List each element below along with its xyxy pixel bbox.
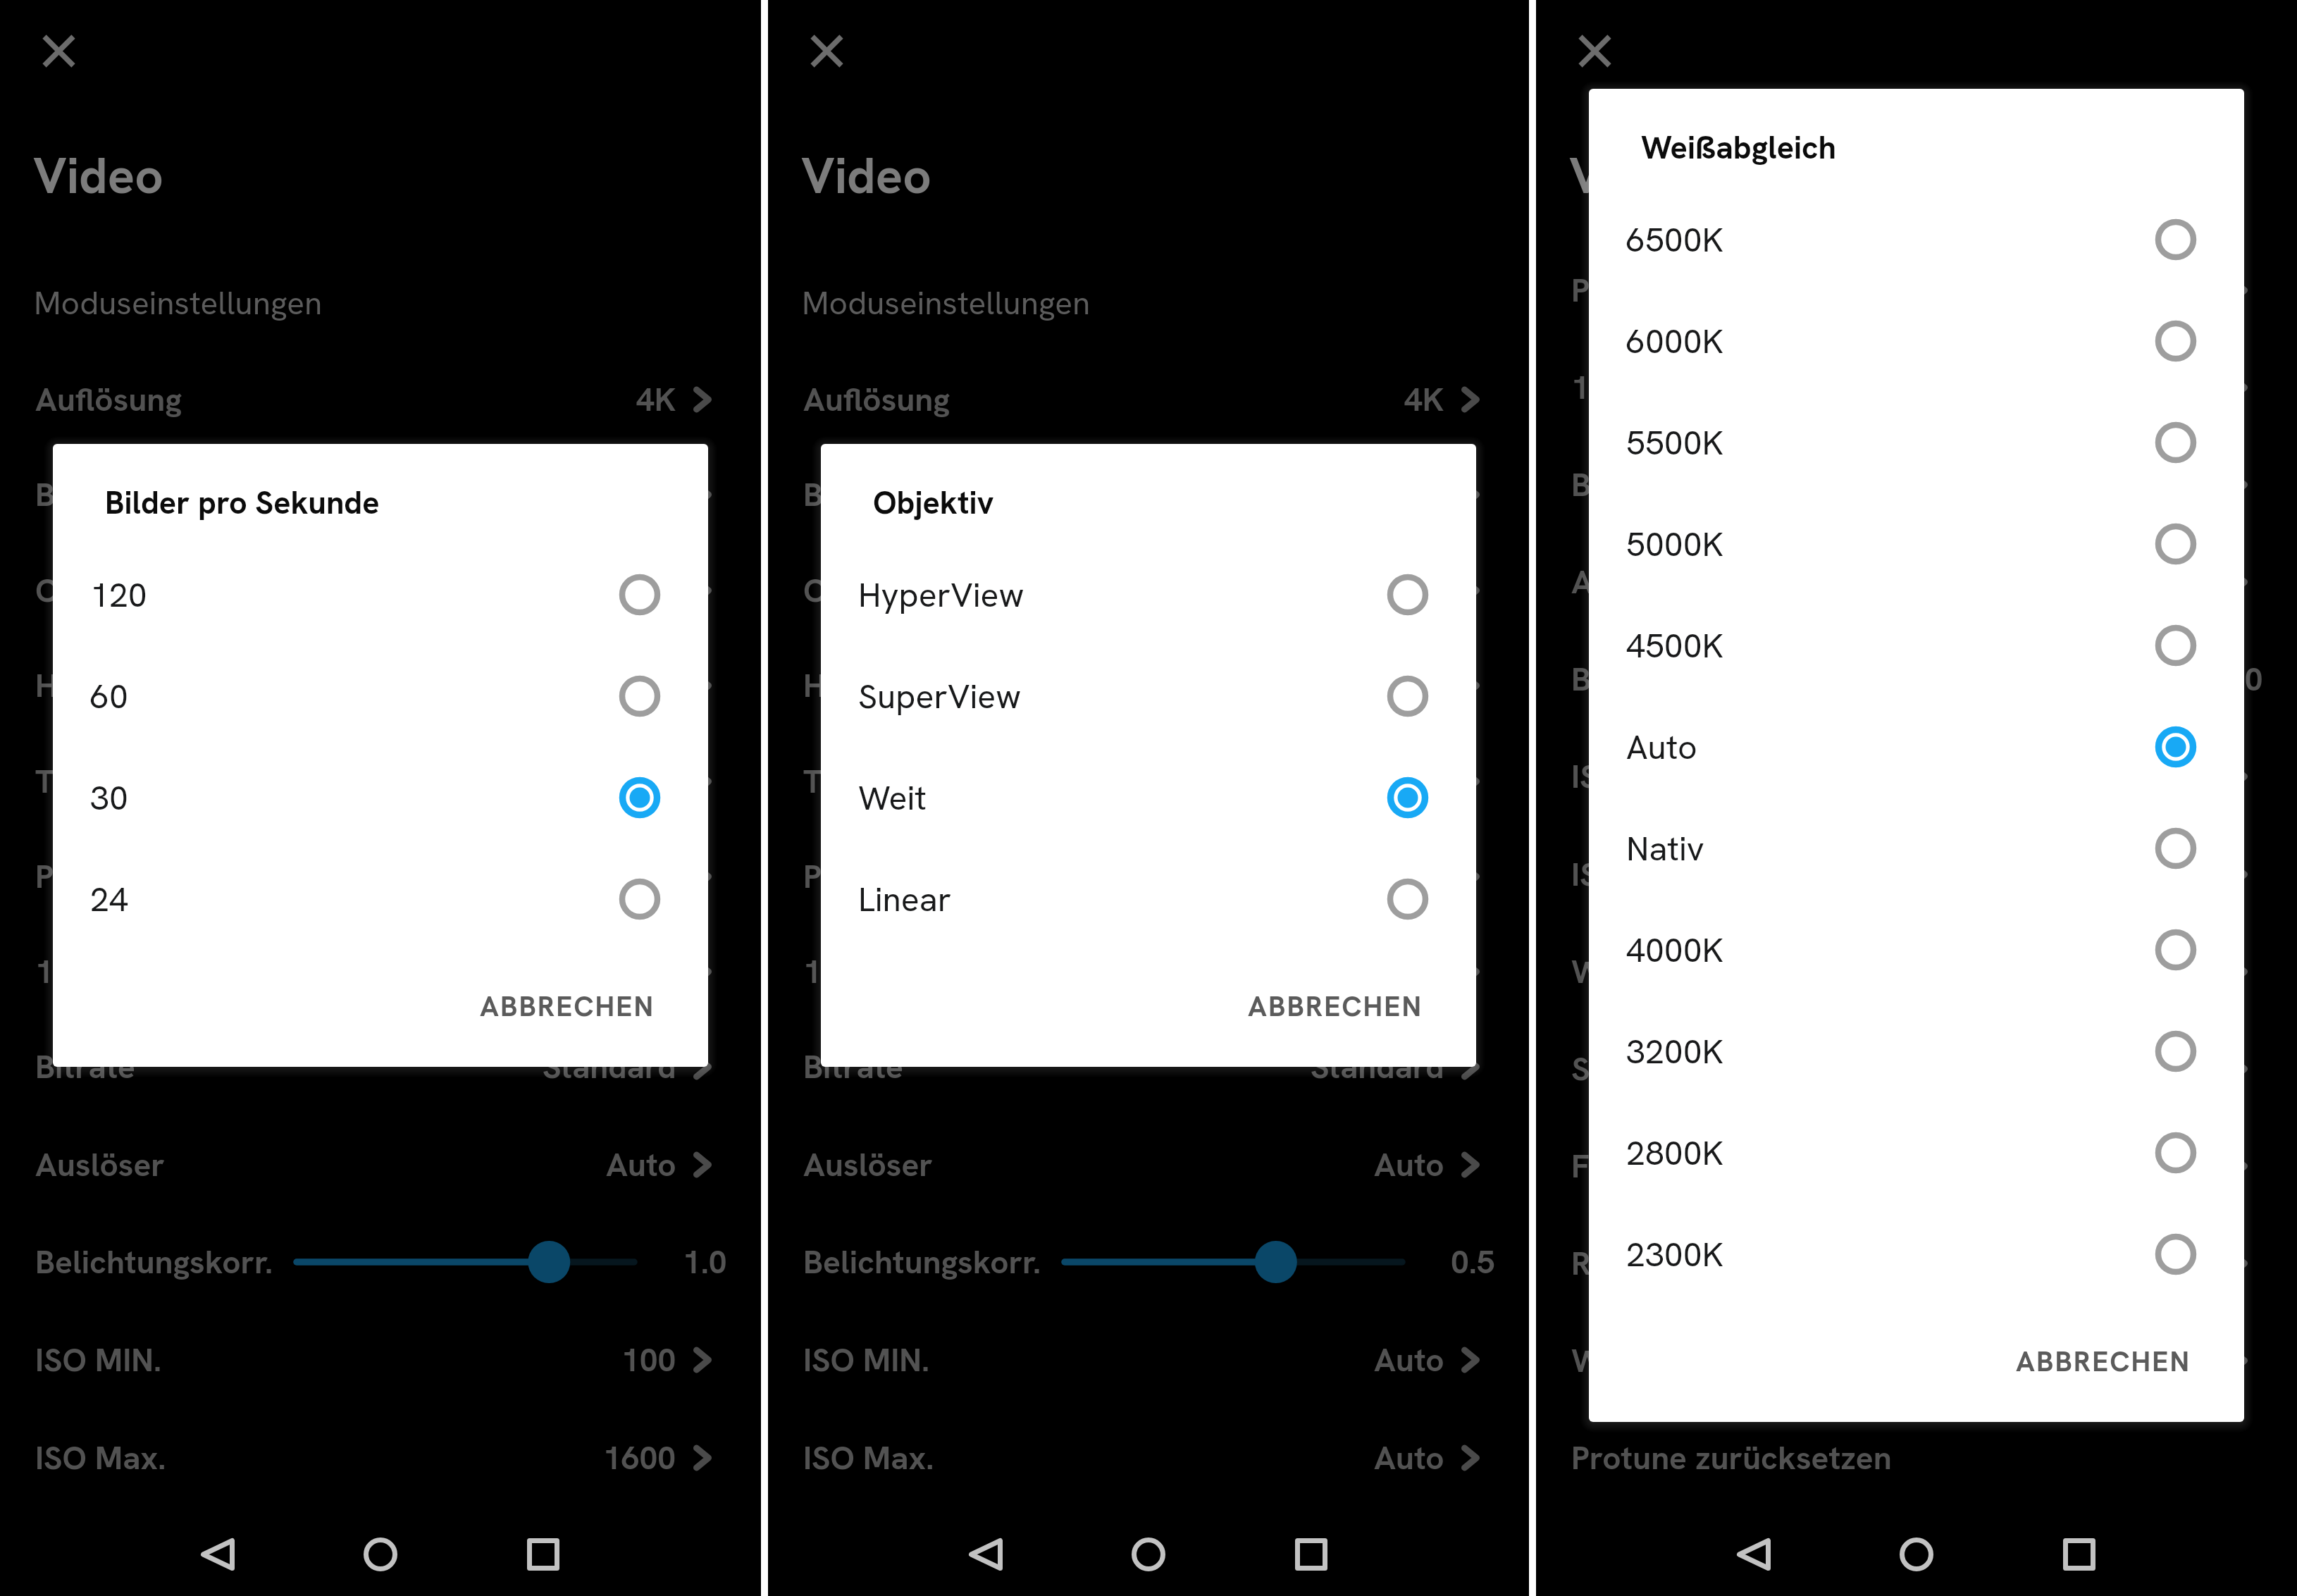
- button[interactable]: 2300K: [1589, 1204, 2244, 1305]
- button[interactable]: Windgeräuschred.: [1536, 1312, 2297, 1409]
- button[interactable]: 24: [53, 848, 708, 950]
- button[interactable]: 30: [53, 747, 708, 848]
- button[interactable]: Timer: [768, 733, 1529, 829]
- staticText: Bilder pro Sekunde: [35, 474, 316, 516]
- button[interactable]: Linear: [821, 848, 1476, 950]
- button[interactable]: Protune zurücksetzen: [1536, 1409, 2297, 1506]
- button[interactable]: Nativ: [1589, 798, 2244, 899]
- button[interactable]: Home: [345, 1519, 416, 1590]
- button[interactable]: Bilder pro Sekunde: [0, 446, 761, 543]
- staticText: 6500K: [1626, 218, 1723, 262]
- button[interactable]: Close: [1561, 17, 1629, 85]
- button[interactable]: 5500K: [1589, 392, 2244, 493]
- staticText: Natürlich: [2076, 1145, 2212, 1187]
- staticText: 30: [90, 776, 128, 820]
- button[interactable]: 120: [53, 544, 708, 645]
- staticText: 0.5: [1451, 1241, 1495, 1283]
- button[interactable]: Protune: [1536, 242, 2297, 338]
- staticText: 1.0: [2219, 658, 2263, 700]
- staticText: Standard: [1311, 1046, 1444, 1088]
- button[interactable]: Bitrate: [0, 1018, 761, 1115]
- button[interactable]: HyperSmooth: [0, 637, 761, 734]
- staticText: Moduseinstellungen: [34, 282, 323, 324]
- button[interactable]: ABBRECHEN: [2002, 1328, 2205, 1395]
- button[interactable]: Bitrate: [768, 1018, 1529, 1115]
- button[interactable]: Schärfe: [1536, 1020, 2297, 1117]
- button[interactable]: ABBRECHEN: [1234, 972, 1437, 1040]
- staticText: Weit: [858, 776, 927, 820]
- staticText: Weißabgleich: [1571, 951, 1771, 993]
- staticText: Auto: [1374, 1144, 1444, 1186]
- staticText: Video: [1569, 143, 1699, 209]
- staticText: Standard: [543, 1046, 676, 1088]
- staticText: HyperView: [858, 573, 1024, 617]
- button[interactable]: Recent apps: [2044, 1519, 2115, 1590]
- button[interactable]: 10-Bit-Farbe: [0, 923, 761, 1020]
- staticText: 60: [90, 674, 128, 719]
- staticText: Linear: [858, 877, 952, 922]
- button[interactable]: Auslöser: [1536, 533, 2297, 630]
- button[interactable]: Weit: [821, 747, 1476, 848]
- button[interactable]: RAW-Audio: [1536, 1215, 2297, 1311]
- button[interactable]: 6000K: [1589, 290, 2244, 392]
- button[interactable]: 4000K: [1589, 899, 2244, 1001]
- button[interactable]: Belichtungskorr.: [768, 1213, 1529, 1310]
- button[interactable]: Auflösung: [0, 351, 761, 447]
- staticText: HyperSmooth: [803, 664, 1006, 707]
- staticText: 120: [90, 573, 147, 617]
- staticText: Belichtungskorr.: [803, 1241, 1041, 1283]
- button[interactable]: ISO MIN.: [1536, 728, 2297, 824]
- button[interactable]: Back: [1719, 1519, 1789, 1590]
- button[interactable]: 5000K: [1589, 493, 2244, 595]
- button[interactable]: Bitrate: [1536, 436, 2297, 533]
- staticText: Ein: [1399, 855, 1444, 898]
- button[interactable]: Bilder pro Sekunde: [768, 446, 1529, 543]
- staticText: Ein: [1399, 664, 1444, 707]
- button[interactable]: Auflösung: [768, 351, 1529, 447]
- button[interactable]: Back: [182, 1519, 253, 1590]
- button[interactable]: Weißabgleich: [1536, 923, 2297, 1020]
- staticText: 24: [90, 877, 128, 922]
- button[interactable]: Recent apps: [508, 1519, 578, 1590]
- button[interactable]: 2800K: [1589, 1102, 2244, 1204]
- button[interactable]: ISO Max.: [768, 1409, 1529, 1506]
- button[interactable]: Timer: [0, 733, 761, 829]
- button[interactable]: Back: [951, 1519, 1021, 1590]
- button[interactable]: HyperView: [821, 544, 1476, 645]
- button[interactable]: ABBRECHEN: [466, 972, 669, 1040]
- button[interactable]: Farbe: [1536, 1118, 2297, 1214]
- button[interactable]: ISO Max.: [0, 1409, 761, 1506]
- staticText: Auto: [1374, 1437, 1444, 1479]
- button[interactable]: Belichtungskorr.: [1536, 631, 2297, 727]
- button[interactable]: Home: [1113, 1519, 1184, 1590]
- button[interactable]: Objektiv: [768, 542, 1529, 638]
- staticText: ABBRECHEN: [480, 988, 655, 1025]
- button[interactable]: Objektiv: [0, 542, 761, 638]
- button[interactable]: 10-Bit-Farbe: [768, 923, 1529, 1020]
- button[interactable]: Protune: [768, 828, 1529, 924]
- button[interactable]: Close: [793, 17, 861, 85]
- button[interactable]: Home: [1881, 1519, 1952, 1590]
- button[interactable]: 60: [53, 645, 708, 747]
- button[interactable]: 6500K: [1589, 189, 2244, 290]
- button[interactable]: Belichtungskorr.: [0, 1213, 761, 1310]
- button[interactable]: ISO MIN.: [768, 1311, 1529, 1408]
- button[interactable]: Auslöser: [768, 1116, 1529, 1213]
- button[interactable]: 4500K: [1589, 595, 2244, 696]
- button[interactable]: Recent apps: [1276, 1519, 1346, 1590]
- staticText: Belichtungskorr.: [1571, 658, 1809, 700]
- button[interactable]: 10-Bit-Farbe: [1536, 339, 2297, 435]
- button[interactable]: ISO Max.: [1536, 826, 2297, 922]
- staticText: Objektiv: [35, 569, 159, 612]
- staticText: Protune: [35, 855, 151, 898]
- button[interactable]: HyperSmooth: [768, 637, 1529, 734]
- button[interactable]: Close: [25, 17, 93, 85]
- staticText: Bilder pro Sekunde: [105, 482, 380, 524]
- button[interactable]: 3200K: [1589, 1001, 2244, 1102]
- button[interactable]: Auto: [1589, 696, 2244, 798]
- button[interactable]: ISO MIN.: [0, 1311, 761, 1408]
- button[interactable]: SuperView: [821, 645, 1476, 747]
- button[interactable]: Protune: [0, 828, 761, 924]
- button[interactable]: Auslöser: [0, 1116, 761, 1213]
